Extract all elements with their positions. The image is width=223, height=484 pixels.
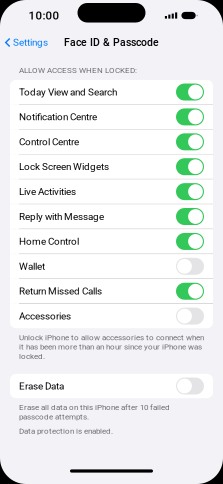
staticText: Lock Screen Widgets <box>19 161 109 172</box>
staticText: Erase all data on this iPhone after 10 f… <box>19 403 170 421</box>
staticText: Erase Data <box>19 380 64 392</box>
staticText: Control Centre <box>19 136 79 148</box>
button[interactable]: Erase Data <box>10 374 213 398</box>
button[interactable]: Accessories <box>10 304 213 328</box>
staticText: Return Missed Calls <box>19 285 102 297</box>
staticText: Data protection is enabled. <box>19 426 113 436</box>
button[interactable]: Lock Screen Widgets <box>10 155 213 179</box>
button[interactable]: Settings <box>0 33 48 52</box>
button[interactable]: Live Activities <box>10 179 213 204</box>
staticText: Unlock iPhone to allow accessories to co… <box>19 333 204 361</box>
staticText: ALLOW ACCESS WHEN LOCKED: <box>19 65 137 75</box>
staticText: 10:00 <box>28 9 59 22</box>
staticText: Accessories <box>19 310 71 322</box>
staticText: Notification Centre <box>19 111 97 123</box>
staticText: Home Control <box>19 236 79 247</box>
staticText: Wallet <box>19 260 45 272</box>
staticText: Settings <box>13 37 48 48</box>
button[interactable]: Return Missed Calls <box>10 279 213 303</box>
button[interactable]: Notification Centre <box>10 105 213 129</box>
button[interactable]: Wallet <box>10 254 213 278</box>
staticText: Face ID & Passcode <box>64 36 159 49</box>
button[interactable]: Control Centre <box>10 130 213 154</box>
staticText: Live Activities <box>19 186 76 197</box>
button[interactable]: Today View and Search <box>10 80 213 104</box>
button[interactable]: Home Control <box>10 229 213 254</box>
staticText: Today View and Search <box>19 86 117 98</box>
staticText: Reply with Message <box>19 211 104 222</box>
button[interactable]: Reply with Message <box>10 204 213 229</box>
